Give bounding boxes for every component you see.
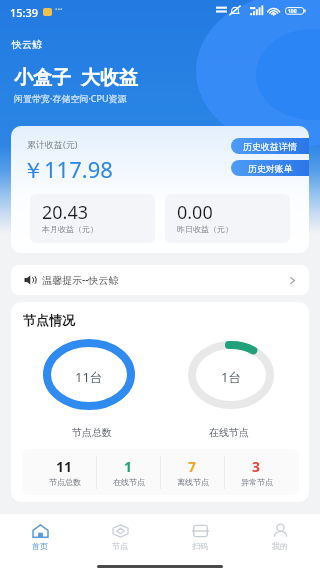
staticText: ￥117.98 — [22, 154, 113, 184]
staticText: 异常节点 — [241, 477, 273, 487]
staticText: 节点情况 — [23, 312, 75, 328]
staticText: 离线节点 — [177, 477, 209, 487]
button[interactable]: 温馨提示--快云鲸 — [11, 265, 309, 295]
staticText: 本月收益（元） — [42, 224, 98, 234]
button[interactable]: 首页 — [0, 514, 80, 551]
staticText: 1 — [124, 457, 133, 476]
staticText: 20.43 — [42, 200, 89, 225]
staticText: 历史收益详情 — [243, 141, 297, 152]
staticText: 11台 — [75, 368, 103, 386]
button[interactable]: 扫码 — [160, 514, 240, 551]
staticText: 11 — [56, 457, 73, 476]
staticText: 首页 — [32, 541, 48, 551]
staticText: 7 — [188, 457, 197, 476]
staticText: 节点总数 — [49, 477, 81, 487]
staticText: ··· — [55, 2, 63, 14]
button[interactable]: 节点 — [80, 514, 160, 551]
staticText: 昨日收益（元） — [177, 224, 233, 234]
staticText: 3 — [252, 457, 261, 476]
staticText: 小盒子 大收益 — [14, 64, 138, 90]
staticText: 15:39 — [10, 5, 39, 20]
staticText: 节点 — [112, 541, 128, 551]
staticText: 0.00 — [177, 200, 213, 225]
button[interactable]: 历史对账单 — [231, 160, 309, 176]
button[interactable]: 我的 — [240, 514, 320, 551]
staticText: 节点总数 — [72, 426, 112, 439]
staticText: 100 — [288, 8, 297, 15]
staticText: 历史对账单 — [248, 163, 293, 174]
staticText: 累计收益(元) — [27, 138, 78, 150]
staticText: 闲置带宽·存储空间·CPU资源 — [14, 92, 127, 104]
staticText: 快云鲸 — [12, 38, 42, 51]
staticText: 扫码 — [192, 541, 208, 551]
staticText: 温馨提示--快云鲸 — [42, 273, 119, 287]
staticText: 1台 — [221, 368, 242, 386]
staticText: 在线节点 — [209, 426, 249, 439]
staticText: 我的 — [272, 541, 288, 551]
staticText: 在线节点 — [113, 477, 145, 487]
button[interactable]: 历史收益详情 — [231, 138, 309, 154]
